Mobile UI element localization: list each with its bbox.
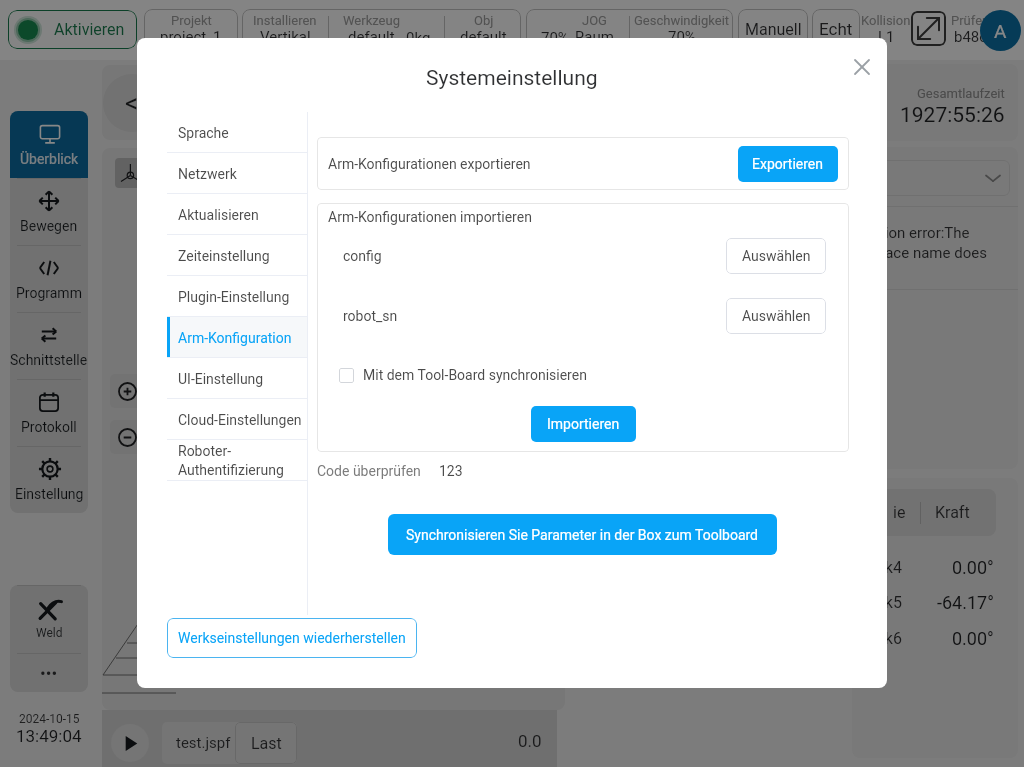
staticText: Arm-Konfigurationen importieren bbox=[328, 209, 532, 225]
staticText: JOG bbox=[582, 13, 607, 28]
staticText: 0.00° bbox=[952, 557, 994, 578]
staticText: Vertikal bbox=[260, 28, 311, 46]
button[interactable]: Roboter- Authentifizierung bbox=[167, 440, 307, 481]
button[interactable]: Aktualisieren bbox=[167, 194, 307, 235]
staticText: Importieren bbox=[547, 416, 620, 432]
staticText: Kollision bbox=[861, 13, 911, 28]
button[interactable]: Einstellung bbox=[10, 446, 88, 513]
button[interactable]: Mehr bbox=[10, 653, 88, 692]
staticText: Projekt bbox=[171, 13, 212, 28]
button[interactable]: Installieren bbox=[242, 9, 328, 49]
staticText: 70% bbox=[541, 29, 569, 47]
staticText: Manuell bbox=[745, 20, 802, 39]
staticText: ••• bbox=[40, 663, 58, 683]
staticText: Echt bbox=[819, 19, 853, 39]
button[interactable]: Auswählen bbox=[726, 238, 826, 274]
staticText: Gesamtlaufzeit bbox=[917, 86, 1005, 101]
staticText: Bewegen bbox=[20, 218, 78, 234]
button[interactable]: Exportieren bbox=[738, 146, 838, 182]
staticText: project_1 bbox=[160, 28, 222, 46]
button[interactable]: Sprache bbox=[167, 112, 307, 153]
button[interactable]: Überblick bbox=[10, 111, 88, 178]
button[interactable]: Netzwerk bbox=[167, 153, 307, 194]
button[interactable]: Manuell bbox=[738, 9, 808, 49]
button[interactable]: Vergrößern bbox=[110, 374, 144, 408]
button[interactable]: Verkleinern bbox=[110, 420, 144, 454]
staticText: Netzwerk bbox=[178, 166, 237, 182]
staticText: Roboter- Authentifizierung bbox=[178, 443, 284, 478]
button[interactable]: Geschwindigkeit bbox=[630, 9, 733, 49]
button[interactable]: Aktivieren bbox=[8, 10, 137, 49]
button[interactable]: UI-Einstellung bbox=[167, 358, 307, 399]
staticText: Werkseinstellungen wiederherstellen bbox=[178, 630, 406, 646]
button[interactable]: test.jspf bbox=[162, 722, 297, 764]
staticText: 70% bbox=[668, 28, 696, 46]
button[interactable]: Achsen bbox=[115, 158, 145, 188]
button[interactable]: Protokoll bbox=[10, 379, 88, 446]
button[interactable]: Schnittstelle bbox=[10, 312, 88, 379]
button[interactable]: Schliessen bbox=[849, 54, 875, 80]
button[interactable]: Plugin-Einstellung bbox=[167, 276, 307, 317]
staticText: < bbox=[125, 88, 139, 118]
button[interactable]: nk6 bbox=[852, 623, 1018, 653]
button[interactable]: Zurück bbox=[103, 74, 161, 132]
staticText: Programm bbox=[16, 285, 82, 301]
button[interactable]: Abspielen bbox=[111, 724, 149, 762]
staticText: nk6 bbox=[876, 629, 902, 648]
staticText: UI-Einstellung bbox=[178, 371, 264, 387]
staticText: Zeiteinstellung bbox=[178, 248, 270, 264]
staticText: Überblick bbox=[20, 151, 79, 167]
button[interactable]: Arm-Konfiguration bbox=[167, 317, 307, 358]
button[interactable]: Echt bbox=[812, 9, 860, 49]
button[interactable]: Werkseinstellungen wiederherstellen bbox=[167, 618, 417, 658]
button[interactable]: Bewegen bbox=[10, 178, 88, 245]
staticText: config bbox=[343, 248, 382, 264]
staticText: 0.00° bbox=[952, 628, 994, 649]
button[interactable]: Importieren bbox=[531, 406, 636, 442]
button[interactable]: Synchronisieren Sie Parameter in der Box… bbox=[388, 514, 777, 555]
staticText: b48c bbox=[954, 28, 988, 46]
staticText: -64.17° bbox=[937, 592, 994, 613]
staticText: nk4 bbox=[876, 558, 902, 577]
button[interactable]: Mit dem Tool-Board synchronisieren bbox=[339, 367, 587, 383]
staticText: Weld bbox=[36, 626, 63, 640]
staticText: Raum bbox=[575, 28, 614, 46]
button[interactable]: A bbox=[980, 10, 1021, 51]
button[interactable]: Zeiteinstellung bbox=[167, 235, 307, 276]
staticText: Einstellung bbox=[15, 486, 84, 502]
button[interactable]: Obj bbox=[445, 9, 521, 49]
staticText: Kraft bbox=[935, 503, 970, 522]
staticText: 13:49:04 bbox=[16, 726, 82, 746]
staticText: tion error:The face name does bbox=[880, 224, 1024, 261]
button[interactable]: Cloud-Einstellungen bbox=[167, 399, 307, 440]
staticText: A bbox=[994, 20, 1007, 42]
button[interactable]: Kollision bbox=[860, 9, 912, 49]
button[interactable]: Last bbox=[235, 722, 297, 764]
staticText: Cloud-Einstellungen bbox=[178, 412, 302, 428]
staticText: Protokoll bbox=[21, 419, 77, 435]
staticText: test.jspf bbox=[176, 734, 231, 752]
staticText: default bbox=[348, 28, 395, 46]
staticText: Schnittstelle bbox=[10, 352, 88, 368]
button[interactable]: Vollbild bbox=[911, 11, 946, 46]
staticText: 2024-10-15 bbox=[19, 712, 80, 726]
staticText: Installieren bbox=[253, 13, 317, 28]
staticText: 1927:55:26 bbox=[900, 103, 1005, 128]
button[interactable]: Projekt bbox=[144, 9, 238, 49]
staticText: Code überprüfen bbox=[317, 463, 421, 479]
staticText: Werkzeug bbox=[343, 13, 400, 28]
button[interactable]: Werkzeug bbox=[329, 9, 444, 49]
staticText: Aktualisieren bbox=[178, 207, 259, 223]
staticText: Exportieren bbox=[752, 156, 824, 172]
button[interactable]: 70% bbox=[526, 9, 629, 49]
staticText: Mit dem Tool-Board synchronisieren bbox=[363, 367, 587, 383]
button[interactable]: Prüfen bbox=[945, 9, 995, 49]
staticText: robot_sn bbox=[343, 308, 398, 324]
button[interactable]: Auswählen bbox=[726, 298, 826, 334]
button[interactable]: nk5 bbox=[852, 587, 1018, 617]
button[interactable]: Auswahl bbox=[860, 160, 1010, 196]
staticText: L1 bbox=[878, 28, 895, 46]
button[interactable]: Programm bbox=[10, 245, 88, 312]
button[interactable]: Weld bbox=[10, 585, 88, 653]
button[interactable]: nk4 bbox=[852, 552, 1018, 582]
